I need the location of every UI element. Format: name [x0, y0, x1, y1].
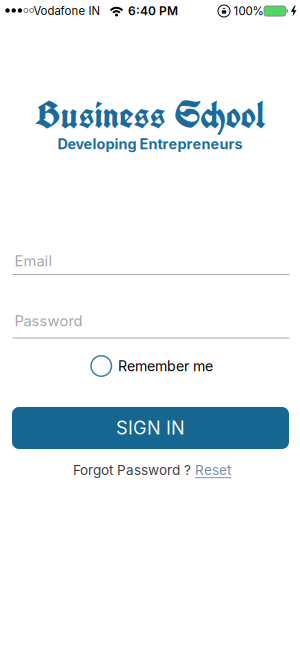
staticText: Password — [14, 312, 82, 330]
button[interactable]: Email — [12, 252, 289, 275]
staticText: Remember me — [118, 357, 213, 374]
staticText: Vodafone IN — [33, 4, 100, 18]
button[interactable]: Reset — [195, 462, 231, 478]
button[interactable]: Password — [12, 312, 289, 338]
staticText: SIGN IN — [116, 417, 185, 439]
button[interactable]: Remember me — [91, 356, 213, 376]
staticText: Reset — [195, 462, 231, 478]
staticText: Forgot Password ? — [73, 462, 191, 478]
staticText: Email — [14, 252, 52, 270]
button[interactable]: SIGN IN — [12, 407, 289, 449]
staticText: 6:40 PM — [128, 4, 178, 18]
staticText: Business School — [34, 91, 265, 139]
staticText: Developing Entrepreneurs — [57, 135, 242, 153]
staticText: 100% — [233, 4, 263, 18]
